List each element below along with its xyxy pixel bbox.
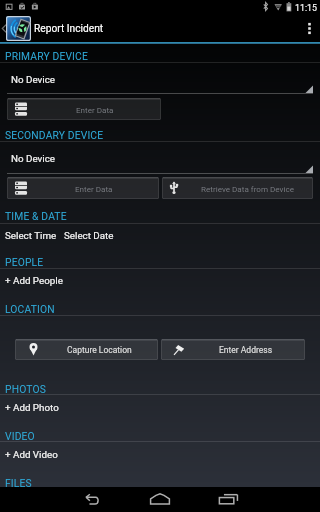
staticText: VIDEO — [5, 430, 35, 442]
button[interactable]: More options — [298, 15, 320, 42]
button[interactable]: Select Time — [0, 0, 52, 11]
button[interactable]: Recent apps — [200, 487, 258, 512]
button[interactable]: Enter Data — [7, 177, 159, 199]
button[interactable]: + Add Video — [0, 0, 53, 11]
staticText: PEOPLE — [5, 256, 44, 268]
button[interactable]: + Add People — [0, 0, 58, 11]
staticText: No Device — [11, 74, 56, 85]
button[interactable]: Back — [62, 487, 120, 512]
staticText: Capture Location — [67, 345, 132, 355]
staticText: PRIMARY DEVICE — [5, 50, 88, 62]
staticText: Enter Data — [75, 184, 113, 193]
staticText: Enter Address — [219, 345, 273, 355]
button[interactable]: Enter Data — [7, 98, 161, 120]
button[interactable]: Home — [131, 487, 189, 512]
staticText: 11:15 — [295, 3, 317, 13]
staticText: PHOTOS — [5, 383, 46, 395]
staticText: Report Incident — [34, 23, 104, 35]
staticText: No Device — [11, 153, 56, 164]
button[interactable]: + Add Photo — [0, 0, 54, 11]
staticText: SECONDARY DEVICE — [5, 129, 104, 141]
staticText: LOCATION — [5, 303, 55, 315]
staticText: Enter Data — [76, 105, 114, 114]
button[interactable] — [0, 69, 320, 95]
button[interactable]: Capture Location — [15, 339, 158, 360]
staticText: Retrieve Data from Device — [201, 184, 294, 193]
button[interactable]: Enter Address — [161, 339, 305, 360]
staticText: TIME & DATE — [5, 210, 67, 222]
button[interactable]: Retrieve Data from Device — [162, 177, 313, 199]
button[interactable] — [0, 148, 320, 175]
staticText: FILES — [5, 477, 32, 489]
button[interactable]: Select Date — [0, 0, 50, 11]
